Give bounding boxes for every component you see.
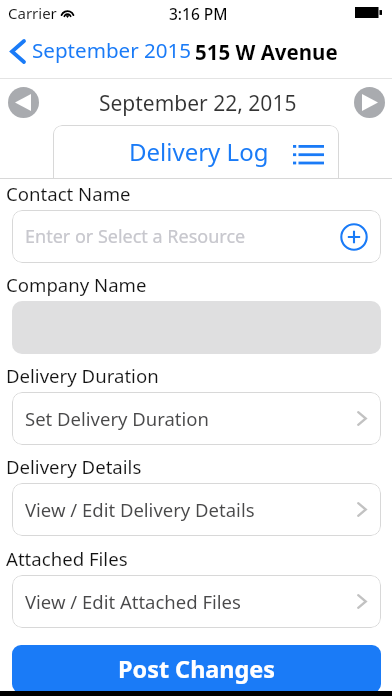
staticText: September 2015 <box>32 36 192 64</box>
staticText: Carrier <box>8 3 57 23</box>
button[interactable]: Set Delivery Duration <box>12 392 381 445</box>
staticText: Set Delivery Duration <box>25 406 209 431</box>
staticText: September 22, 2015 <box>99 89 297 118</box>
staticText: Post Changes <box>118 653 276 685</box>
staticText: 3:16 PM <box>169 3 228 24</box>
staticText: 515 W Avenue <box>195 38 338 66</box>
button[interactable]: View / Edit Attached Files <box>12 575 381 628</box>
staticText: Company Name <box>6 272 147 297</box>
button[interactable]: Enter or Select a Resource <box>12 210 381 263</box>
button[interactable]: Next day <box>354 87 385 118</box>
staticText: Delivery Details <box>6 454 142 479</box>
button[interactable]: September 2015 <box>4 34 196 68</box>
staticText: Delivery Log <box>129 135 269 168</box>
button[interactable]: View / Edit Delivery Details <box>12 483 381 536</box>
staticText: Attached Files <box>6 546 128 571</box>
staticText: View / Edit Delivery Details <box>25 497 255 522</box>
staticText: Enter or Select a Resource <box>25 224 246 249</box>
staticText: Delivery Duration <box>6 363 159 388</box>
button[interactable]: Delivery Log <box>53 125 339 179</box>
staticText: View / Edit Attached Files <box>25 589 241 614</box>
staticText: Contact Name <box>6 181 131 206</box>
button[interactable]: Previous day <box>8 87 39 118</box>
button[interactable]: Post Changes <box>12 645 381 693</box>
